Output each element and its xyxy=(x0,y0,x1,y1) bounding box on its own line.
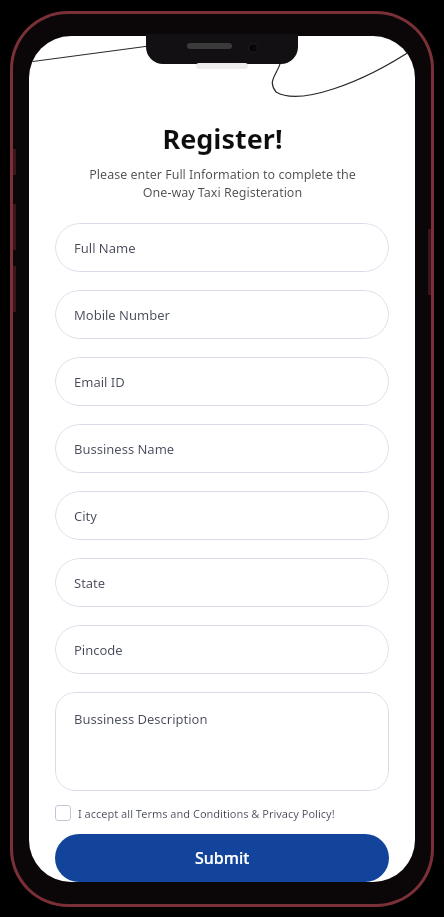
staticText: I accept all Terms and Conditions & Priv… xyxy=(78,806,335,821)
staticText: Please enter Full Information to complet… xyxy=(89,166,356,201)
staticText: Submit xyxy=(195,847,250,869)
staticText: Bussiness Description xyxy=(74,710,208,728)
staticText: Pincode xyxy=(74,641,123,659)
staticText: Register! xyxy=(162,120,283,157)
staticText: State xyxy=(74,574,106,592)
button[interactable]: Submit xyxy=(55,834,389,882)
staticText: Full Name xyxy=(74,239,136,257)
staticText: Mobile Number xyxy=(74,306,170,324)
staticText: City xyxy=(74,507,97,525)
staticText: Bussiness Name xyxy=(74,440,175,458)
staticText: Email ID xyxy=(74,373,125,391)
button[interactable]: Pincode xyxy=(55,625,389,674)
other: Accept terms checkbox xyxy=(55,805,71,821)
button[interactable]: Email ID xyxy=(55,357,389,406)
button[interactable]: Mobile Number xyxy=(55,290,389,339)
button[interactable]: State xyxy=(55,558,389,607)
button[interactable]: Bussiness Description xyxy=(55,692,389,791)
button[interactable]: City xyxy=(55,491,389,540)
button[interactable]: Full Name xyxy=(55,223,389,272)
button[interactable]: Bussiness Name xyxy=(55,424,389,473)
button[interactable]: Accept terms checkbox xyxy=(55,805,389,821)
